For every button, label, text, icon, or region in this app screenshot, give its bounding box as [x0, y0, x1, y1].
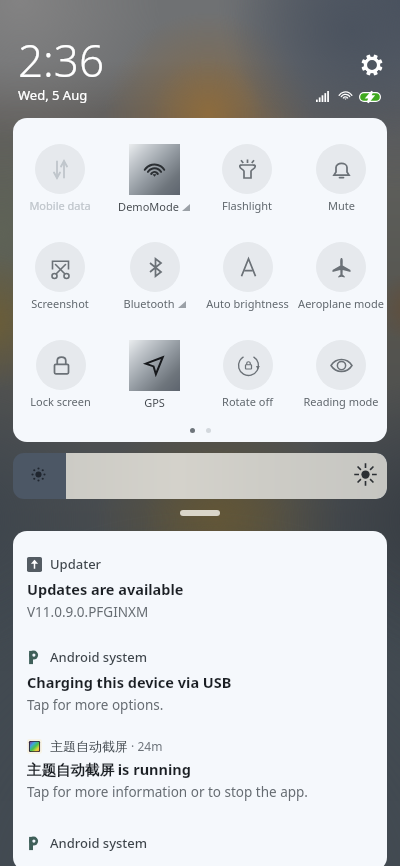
staticText: Charging this device via USB: [27, 672, 232, 692]
staticText: Reading mode: [303, 394, 379, 409]
button[interactable]: Android system: [13, 648, 387, 714]
staticText: Android system: [50, 834, 148, 852]
staticText: Tap for more options.: [27, 696, 164, 714]
button[interactable]: Screenshot: [13, 242, 107, 322]
staticText: 主题自动截屏 is running: [27, 759, 191, 779]
button[interactable]: Auto brightness: [200, 242, 294, 322]
button[interactable]: Rotate off: [200, 340, 294, 420]
staticText: GPS: [144, 395, 165, 410]
button[interactable]: Mute: [294, 144, 387, 224]
staticText: Rotate off: [222, 394, 273, 409]
button[interactable]: Settings: [354, 47, 390, 83]
button[interactable]: GPS: [107, 340, 201, 420]
button[interactable]: Brightness: [13, 453, 387, 499]
staticText: · 24m: [128, 738, 163, 754]
button[interactable]: DemoMode: [107, 144, 201, 224]
button[interactable]: Bluetooth: [107, 242, 201, 322]
staticText: Wed, 5 Aug: [18, 86, 88, 104]
staticText: Updater: [50, 555, 102, 573]
button[interactable]: Updater: [13, 555, 387, 621]
staticText: Aeroplane mode: [298, 296, 384, 311]
staticText: Mobile data: [29, 198, 91, 213]
staticText: 2:36: [18, 30, 105, 90]
staticText: Bluetooth: [123, 296, 175, 311]
staticText: DemoMode: [118, 199, 179, 214]
staticText: Updates are available: [27, 579, 184, 599]
staticText: V11.0.9.0.PFGINXM: [27, 603, 149, 621]
staticText: Android system: [50, 648, 148, 666]
button[interactable]: 主题自动截屏: [13, 738, 387, 801]
button[interactable]: Mobile data: [13, 144, 107, 224]
button[interactable]: Drag handle: [180, 510, 220, 516]
button[interactable]: Reading mode: [294, 340, 387, 420]
button[interactable]: Android system: [13, 834, 387, 852]
staticText: Mute: [328, 198, 355, 213]
staticText: 主题自动截屏: [50, 738, 128, 754]
staticText: Screenshot: [31, 296, 89, 311]
staticText: Flashlight: [222, 198, 272, 213]
staticText: Tap for more information or to stop the …: [27, 783, 308, 801]
staticText: Lock screen: [30, 394, 91, 409]
button[interactable]: Aeroplane mode: [294, 242, 387, 322]
button[interactable]: Lock screen: [13, 340, 107, 420]
staticText: Auto brightness: [206, 296, 289, 311]
button[interactable]: Flashlight: [200, 144, 294, 224]
